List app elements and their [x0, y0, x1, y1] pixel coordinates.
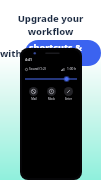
button[interactable]: Mail [25, 87, 42, 101]
staticText: Enter protect [60, 97, 77, 101]
staticText: Mail [31, 97, 37, 101]
staticText: Mock overlay [43, 97, 60, 101]
button[interactable]: Enter protect [60, 87, 77, 101]
staticText: 1:00 h [67, 67, 77, 71]
staticText: Upgrade your workflow [0, 12, 101, 38]
button[interactable]: Mock overlay [43, 87, 60, 101]
button[interactable]: Volume slider [25, 76, 77, 82]
staticText: shortcuts & tiles [29, 41, 97, 65]
staticText: with [0, 47, 25, 60]
staticText: 4:41 [25, 57, 32, 62]
staticText: Sound (1:2) [29, 67, 46, 71]
